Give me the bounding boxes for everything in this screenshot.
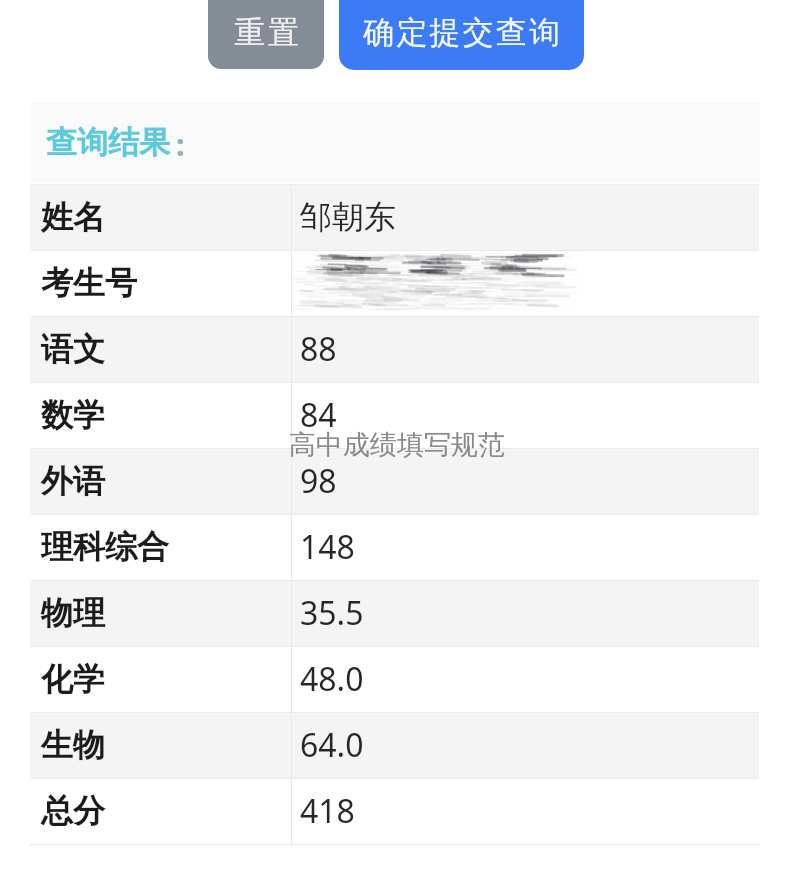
button[interactable]: 考生号 [30,251,759,317]
staticText: 数学 [41,395,105,435]
button[interactable]: 姓名 [30,185,759,251]
button[interactable]: 数学 [30,383,759,449]
staticText: 化学 [41,659,105,699]
button[interactable]: 理科综合 [30,515,759,581]
staticText: 重置 [233,13,300,52]
staticText: 考生号 [41,263,137,303]
staticText: 98 [300,459,337,503]
staticText: 邹朝东 [300,197,396,237]
staticText: 418 [300,789,355,833]
staticText: 高中成绩填写规范 [289,428,505,462]
staticText: 外语 [41,461,105,501]
button[interactable]: 总分 [30,779,759,845]
staticText: 总分 [41,791,105,831]
button[interactable]: 外语 [30,449,759,515]
staticText: 查询结果 [46,123,170,162]
staticText: 48.0 [300,657,364,701]
button[interactable]: 语文 [30,317,759,383]
staticText: 物理 [41,593,105,633]
staticText: 35.5 [300,591,364,635]
staticText: 64.0 [300,723,364,767]
button[interactable]: 物理 [30,581,759,647]
staticText: : [176,123,185,165]
staticText: 生物 [41,725,105,765]
staticText: 88 [300,327,337,371]
button[interactable]: 重置 [208,0,324,69]
staticText: 确定提交查询 [363,13,563,52]
staticText: 姓名 [41,197,105,237]
staticText: 84 [300,393,337,437]
staticText: 148 [300,525,355,569]
button[interactable]: 生物 [30,713,759,779]
other: Redacted candidate number [290,252,578,314]
button[interactable]: 确定提交查询 [339,0,584,70]
staticText: 语文 [41,329,105,369]
staticText: 理科综合 [41,527,169,567]
button[interactable]: 化学 [30,647,759,713]
